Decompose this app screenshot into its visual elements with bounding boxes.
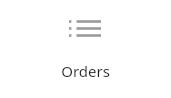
other: Orders list — [69, 18, 102, 39]
staticText: Orders — [61, 61, 110, 81]
button[interactable]: Orders list — [0, 0, 171, 98]
